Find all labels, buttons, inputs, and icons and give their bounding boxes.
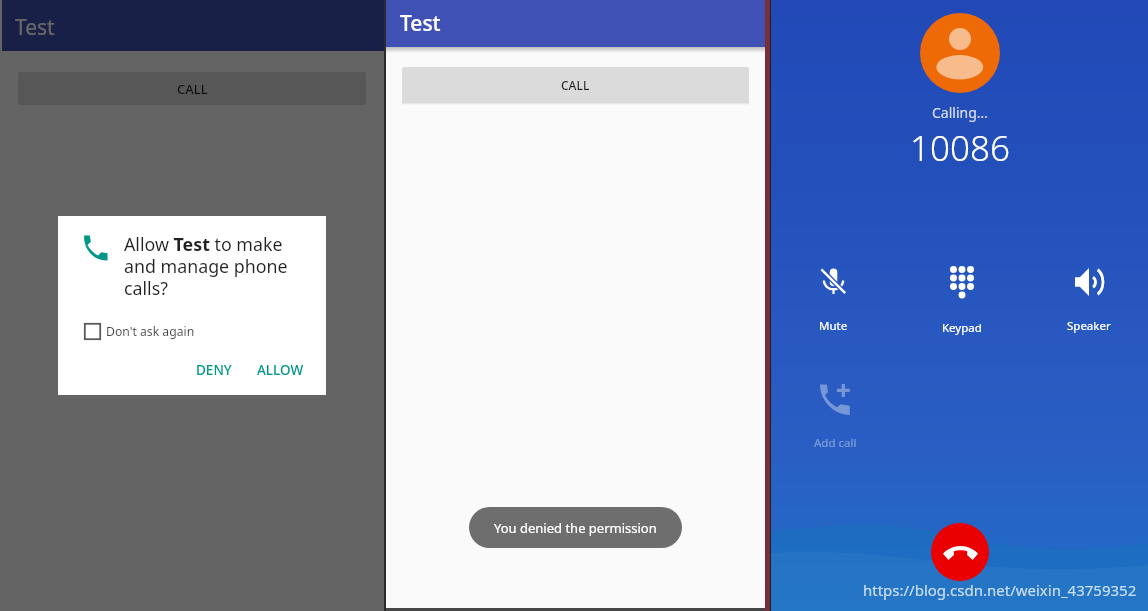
staticText: Calling… — [932, 103, 988, 122]
button[interactable]: Add call — [791, 378, 879, 456]
button[interactable]: Contact avatar — [920, 13, 1000, 93]
button[interactable]: Mute — [789, 262, 877, 340]
staticText: Keypad — [942, 320, 982, 336]
staticText: Mute — [819, 318, 848, 334]
button[interactable]: DENY — [190, 355, 238, 385]
staticText: Allow Test to make and manage phone call… — [124, 232, 296, 300]
staticText: Add call — [814, 435, 857, 451]
button[interactable]: End call — [931, 523, 989, 581]
staticText: CALL — [561, 77, 590, 93]
button[interactable]: Keypad — [918, 260, 1006, 338]
button[interactable]: Speaker — [1045, 262, 1133, 340]
staticText: 10086 — [910, 124, 1010, 172]
staticText: Test — [15, 13, 55, 42]
staticText: DENY — [196, 361, 232, 379]
staticText: Test — [400, 9, 441, 38]
staticText: Speaker — [1067, 318, 1111, 334]
button[interactable]: Don't ask again — [84, 323, 195, 340]
staticText: CALL — [177, 80, 208, 98]
staticText: Don't ask again — [106, 323, 195, 340]
staticText: ALLOW — [257, 361, 304, 379]
staticText: You denied the permission — [494, 519, 657, 537]
staticText: https://blog.csdn.net/weixin_43759352 — [863, 580, 1137, 600]
button[interactable]: CALL — [18, 72, 366, 105]
button[interactable]: CALL — [402, 67, 749, 102]
button[interactable]: ALLOW — [251, 355, 310, 385]
